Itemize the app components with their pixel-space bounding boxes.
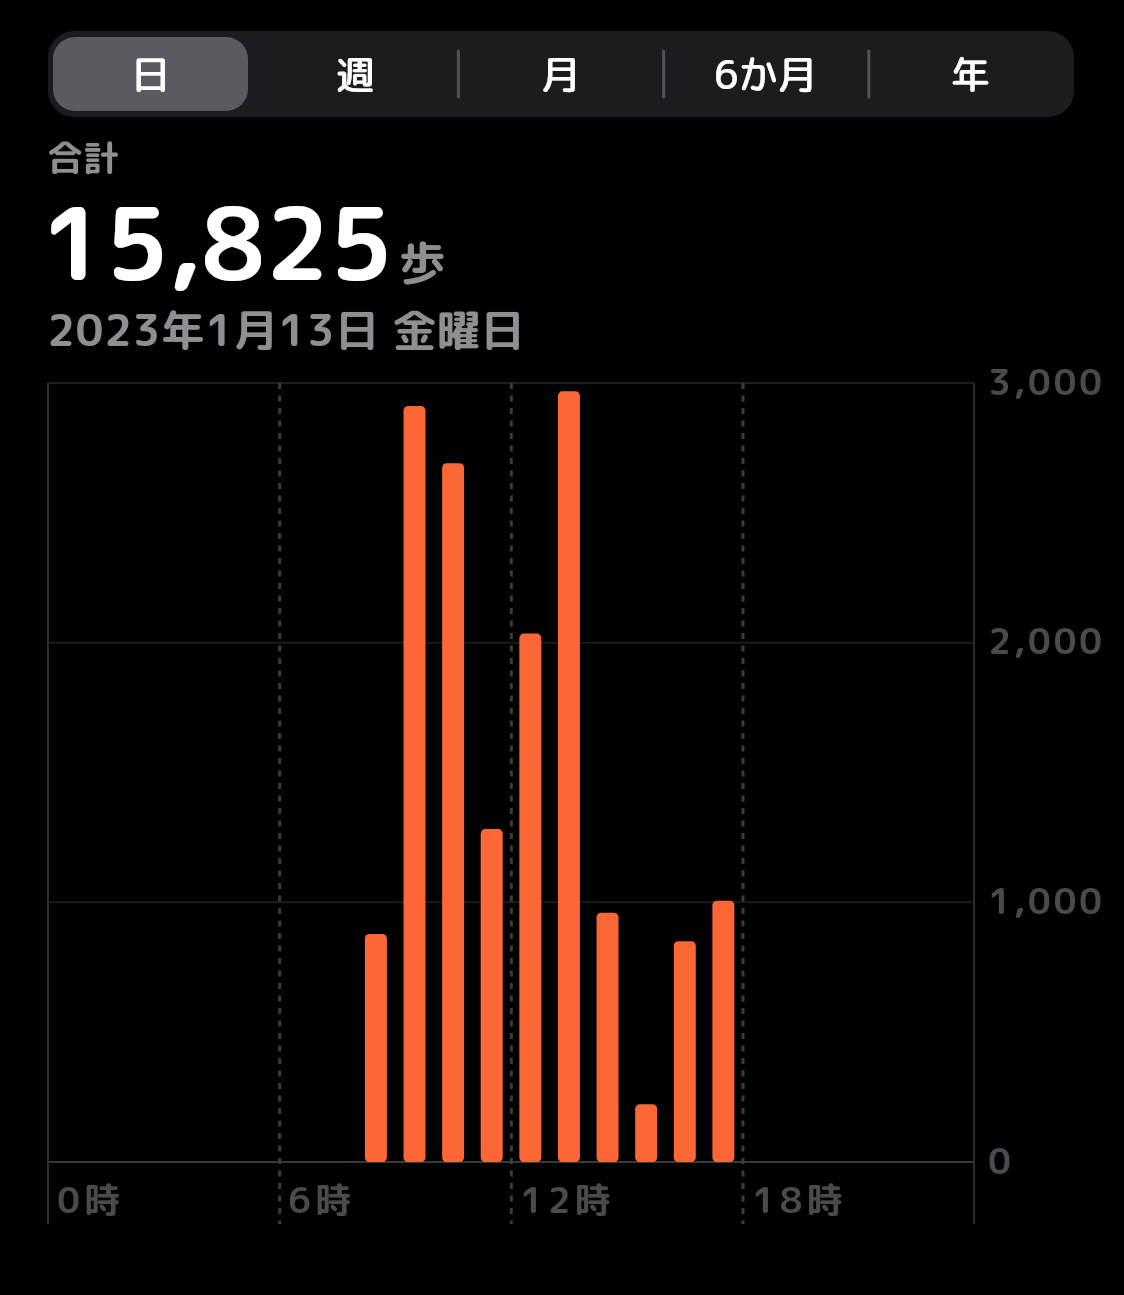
staticText: 0時 xyxy=(57,1174,126,1224)
staticText: 合計 xyxy=(47,132,120,182)
other: 歩数の時間別グラフ xyxy=(0,0,1124,1295)
staticText: 年 xyxy=(951,47,991,101)
staticText: 0 xyxy=(988,1135,1014,1185)
staticText: 日 xyxy=(131,47,171,101)
button[interactable]: 年 xyxy=(868,31,1073,117)
staticText: 3,000 xyxy=(988,356,1105,406)
staticText: 15,825 xyxy=(41,172,394,312)
button[interactable]: 6か月 xyxy=(663,31,868,117)
staticText: 月 xyxy=(541,47,581,101)
staticText: 週 xyxy=(336,47,376,101)
staticText: 12時 xyxy=(520,1174,616,1224)
button[interactable]: 月 xyxy=(458,31,663,117)
button[interactable]: 週 xyxy=(253,31,458,117)
staticText: 2,000 xyxy=(988,615,1105,665)
staticText: 6時 xyxy=(288,1174,357,1224)
staticText: 2023年1月13日 金曜日 xyxy=(47,299,526,360)
staticText: 18時 xyxy=(752,1174,848,1224)
staticText: 歩 xyxy=(399,229,446,295)
staticText: 6か月 xyxy=(714,47,817,101)
staticText: 1,000 xyxy=(988,875,1105,925)
button[interactable]: 日 xyxy=(48,31,253,117)
